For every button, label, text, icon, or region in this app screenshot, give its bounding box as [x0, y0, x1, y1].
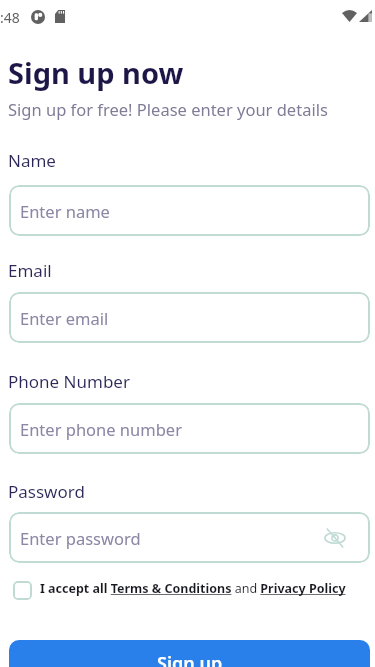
staticText: Sign up now: [8, 53, 184, 92]
staticText: Enter password: [20, 527, 141, 549]
button[interactable]: Sign up: [9, 640, 370, 667]
staticText: Email: [8, 259, 52, 282]
staticText: Enter phone number: [20, 418, 182, 440]
button[interactable]: Enter name: [9, 185, 370, 236]
staticText: Sign up: [157, 651, 223, 667]
button[interactable]: I accept all Terms & Conditions and Priv…: [13, 581, 346, 600]
staticText: I accept all Terms & Conditions and Priv…: [40, 580, 346, 597]
staticText: :48: [0, 8, 20, 27]
staticText: Phone Number: [8, 370, 130, 393]
staticText: Enter email: [20, 307, 109, 329]
staticText: Enter name: [20, 200, 110, 222]
staticText: Password: [8, 480, 85, 503]
button[interactable]: Enter email: [9, 292, 370, 343]
staticText: Name: [8, 149, 56, 172]
button[interactable]: Enter password: [9, 512, 370, 563]
staticText: Sign up for free! Please enter your deta…: [8, 98, 328, 120]
button[interactable]: Enter phone number: [9, 403, 370, 454]
